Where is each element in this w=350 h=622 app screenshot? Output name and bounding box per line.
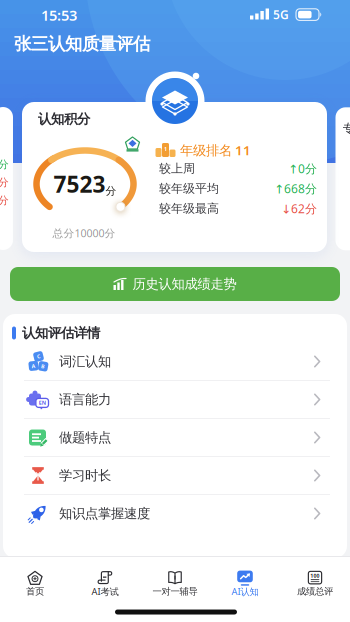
staticText: ↑0分 [288,160,317,176]
button[interactable]: EN [7,380,343,418]
button[interactable]: 历史认知成绩走势 [10,267,340,301]
staticText: 词汇认知 [59,353,111,370]
staticText: 5G [273,6,289,22]
staticText: 认知评估详情 [22,325,100,341]
staticText: 语言能力 [59,391,111,408]
staticText: 分 [0,194,9,207]
button[interactable]: 一对一辅导 [140,566,210,612]
staticText: AI认知 [231,585,258,598]
button[interactable]: C [7,342,343,380]
staticText: 总分10000分 [52,226,115,240]
staticText: ↑668分 [274,180,317,196]
staticText: 张三认知质量评估 [14,33,150,55]
staticText: 较年级平均 [159,181,219,196]
staticText: ↓62分 [281,200,317,216]
staticText: 历史认知成绩走势 [132,276,236,292]
staticText: 分 [0,176,9,189]
staticText: 7523分 [53,169,116,199]
staticText: 年级排名 11 [180,141,251,159]
button[interactable]: 分 [0,107,13,250]
staticText: 认知积分 [38,111,90,127]
button[interactable]: 专 [335,107,350,250]
staticText: 100 [309,571,321,580]
staticText: A [31,362,35,369]
staticText: 成绩总评 [297,586,333,597]
staticText: EN [39,399,46,406]
button[interactable]: 100 [280,566,350,612]
button[interactable]: 知识点掌握速度 [7,494,343,532]
staticText: 15:53 [41,5,77,25]
staticText: 较上周 [159,161,195,176]
button[interactable]: AI认知 [210,566,280,612]
button[interactable]: 做题特点 [7,418,343,456]
staticText: 学习时长 [59,467,111,484]
button[interactable]: 学习时长 [7,456,343,494]
staticText: 首页 [26,586,44,597]
staticText: 做题特点 [59,429,111,446]
staticText: B [41,363,45,370]
staticText: 分 [0,158,9,171]
staticText: C [37,353,40,360]
staticText: AI考试 [91,585,118,598]
staticText: 知识点掌握速度 [59,505,150,522]
staticText: 较年级最高 [159,201,219,216]
staticText: 专 [342,121,350,136]
staticText: 1 [164,145,167,153]
button[interactable]: 首页 [0,566,70,612]
staticText: 一对一辅导 [152,586,197,597]
button[interactable]: 认知积分 [22,102,327,252]
button[interactable]: AI考试 [70,566,140,612]
